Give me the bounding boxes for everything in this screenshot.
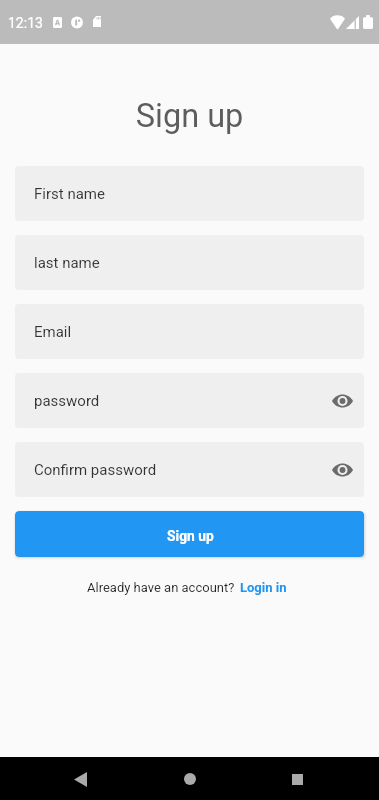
- staticText: Login in: [240, 580, 287, 595]
- button[interactable]: Toggle password visibility: [323, 451, 361, 489]
- staticText: Sign up: [167, 528, 214, 544]
- button[interactable]: Back: [64, 763, 96, 795]
- staticText: Email: [34, 323, 72, 341]
- staticText: Already have an account?: [87, 580, 235, 595]
- button[interactable]: Confirm password: [15, 442, 364, 497]
- button[interactable]: Sign up: [15, 511, 364, 557]
- button[interactable]: Login in: [240, 580, 287, 595]
- staticText: Sign up: [0, 97, 379, 135]
- button[interactable]: Home: [174, 763, 206, 795]
- staticText: Confirm password: [34, 461, 157, 479]
- button[interactable]: Recent apps: [281, 763, 313, 795]
- button[interactable]: last name: [15, 235, 364, 290]
- button[interactable]: First name: [15, 166, 364, 221]
- button[interactable]: Toggle password visibility: [323, 382, 361, 420]
- button[interactable]: password: [15, 373, 364, 428]
- button[interactable]: Email: [15, 304, 364, 359]
- staticText: password: [34, 392, 100, 410]
- staticText: last name: [34, 254, 100, 272]
- staticText: First name: [34, 185, 105, 203]
- staticText: 12:13: [8, 15, 43, 31]
